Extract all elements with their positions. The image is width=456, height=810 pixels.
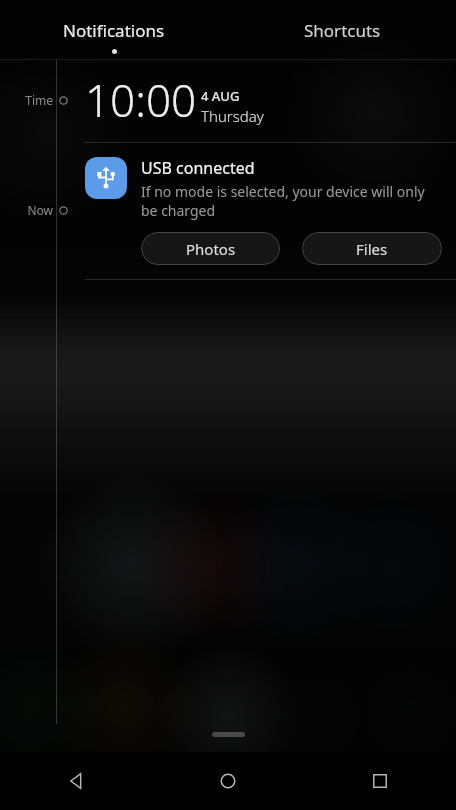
- button[interactable]: Notifications: [0, 0, 228, 60]
- staticText: Time: [14, 92, 53, 108]
- staticText: Photos: [186, 239, 236, 259]
- button[interactable]: Files: [302, 232, 442, 265]
- staticText: Now: [14, 202, 53, 218]
- button[interactable]: Close notification shade: [0, 724, 456, 752]
- button[interactable]: Recent apps: [304, 752, 456, 810]
- button[interactable]: 10:00: [85, 70, 264, 130]
- button[interactable]: Home: [152, 752, 304, 810]
- staticText: USB connected: [141, 157, 255, 179]
- staticText: Files: [356, 239, 388, 259]
- staticText: Thursday: [201, 106, 264, 126]
- staticText: 4 AUG: [201, 87, 240, 105]
- button[interactable]: Shortcuts: [228, 0, 456, 60]
- staticText: Shortcuts: [304, 19, 381, 42]
- button[interactable]: Photos: [141, 232, 280, 265]
- staticText: 10:00: [85, 70, 197, 130]
- button[interactable]: USB connected: [0, 143, 456, 279]
- staticText: Notifications: [63, 19, 165, 42]
- staticText: If no mode is selected, your device will…: [141, 182, 442, 220]
- button[interactable]: Back: [0, 752, 152, 810]
